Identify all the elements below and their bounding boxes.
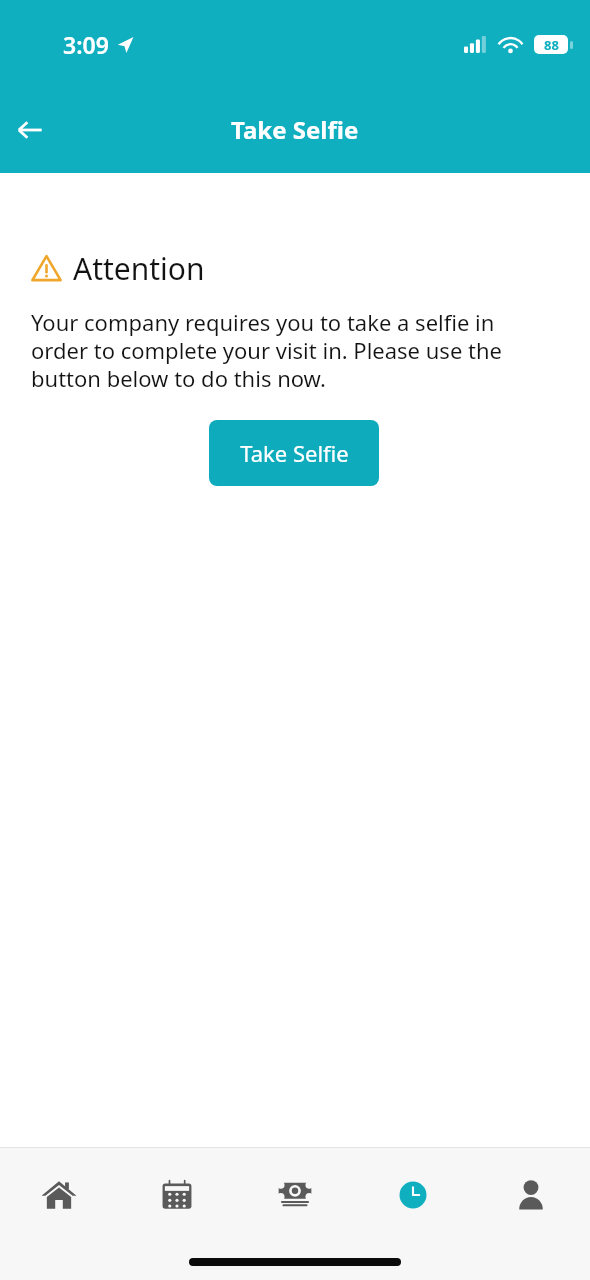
button[interactable]: Calendar (118, 1167, 236, 1223)
staticText: Attention (73, 248, 205, 289)
button[interactable]: Time (354, 1167, 472, 1223)
button[interactable]: Payments (236, 1167, 354, 1223)
staticText: Take Selfie (240, 438, 349, 468)
button[interactable]: Take Selfie (209, 420, 379, 486)
staticText: Take Selfie (231, 113, 359, 146)
staticText: 3:09 (63, 29, 109, 60)
staticText: 88 (544, 36, 559, 54)
button[interactable]: Home (0, 1167, 118, 1223)
staticText: Your company requires you to take a self… (31, 307, 545, 394)
button[interactable]: Back (8, 108, 52, 152)
button[interactable]: Profile (472, 1167, 590, 1223)
